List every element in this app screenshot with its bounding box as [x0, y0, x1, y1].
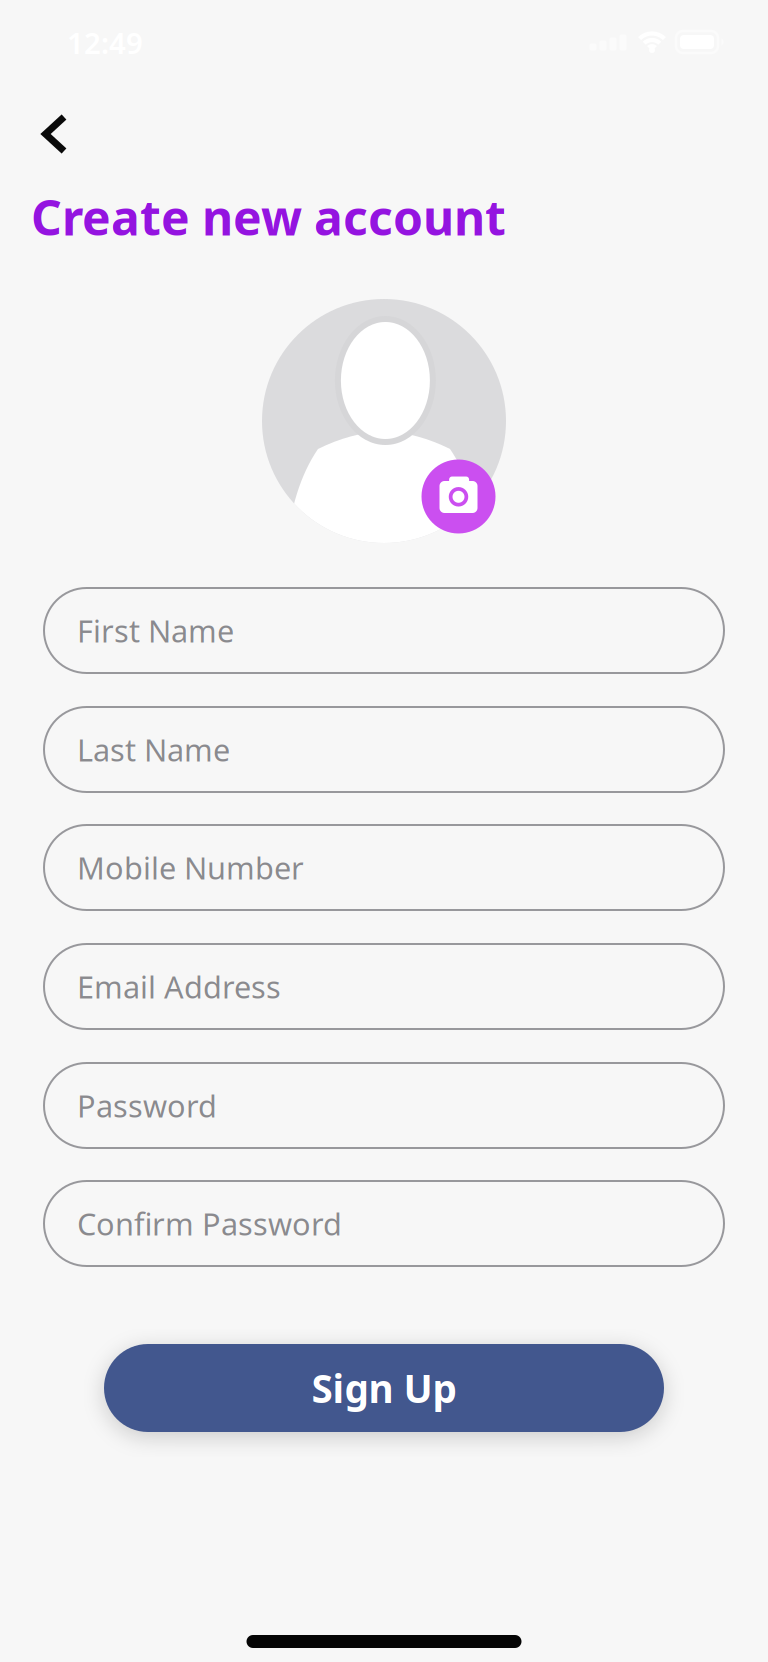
button[interactable]: Password: [44, 1063, 724, 1148]
button[interactable]: Mobile Number: [44, 825, 724, 910]
staticText: First Name: [77, 610, 234, 651]
staticText: Sign Up: [311, 1362, 456, 1414]
staticText: Create new account: [31, 185, 506, 249]
staticText: Password: [77, 1085, 217, 1126]
button[interactable]: Email Address: [44, 944, 724, 1029]
button[interactable]: Last Name: [44, 707, 724, 792]
staticText: Mobile Number: [77, 847, 304, 888]
button[interactable]: Back: [40, 112, 70, 156]
staticText: Email Address: [77, 966, 281, 1007]
button[interactable]: Confirm Password: [44, 1181, 724, 1266]
button[interactable]: Choose profile photo: [421, 459, 495, 533]
button[interactable]: First Name: [44, 588, 724, 673]
staticText: Last Name: [77, 729, 230, 770]
button[interactable]: Sign Up: [104, 1344, 664, 1432]
staticText: Confirm Password: [77, 1203, 342, 1244]
